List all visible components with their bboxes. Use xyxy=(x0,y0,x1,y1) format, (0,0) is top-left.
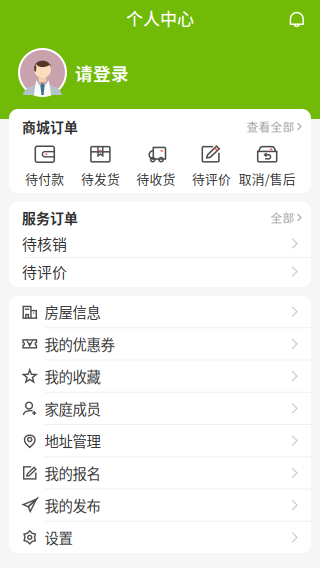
button[interactable]: 请登录 xyxy=(0,36,320,109)
staticText: 取消/售后 xyxy=(239,169,296,188)
staticText: 我的收藏 xyxy=(44,366,100,387)
staticText: 待发货 xyxy=(81,169,120,188)
staticText: 待评价 xyxy=(192,169,231,188)
button[interactable]: 全部 xyxy=(271,203,302,232)
button[interactable]: 待收货 xyxy=(128,143,184,188)
button[interactable]: 我的优惠券 xyxy=(9,328,311,359)
button[interactable]: 我的收藏 xyxy=(9,360,311,392)
staticText: 待收货 xyxy=(136,169,175,188)
button[interactable]: 我的报名 xyxy=(9,457,311,488)
button[interactable]: 待评价 xyxy=(9,258,311,285)
button[interactable]: 地址管理 xyxy=(9,425,311,456)
staticText: 待核销 xyxy=(22,233,67,254)
button[interactable]: 设置 xyxy=(9,522,311,553)
staticText: 房屋信息 xyxy=(44,301,100,322)
staticText: 地址管理 xyxy=(44,430,100,451)
staticText: 请登录 xyxy=(75,60,129,85)
staticText: 待评价 xyxy=(22,261,67,282)
staticText: 设置 xyxy=(44,527,72,548)
button[interactable]: 房屋信息 xyxy=(9,296,311,327)
button[interactable]: 待评价 xyxy=(184,143,239,188)
staticText: 商城订单 xyxy=(22,116,78,137)
button[interactable]: 查看全部 xyxy=(247,112,302,141)
button[interactable]: 我的发布 xyxy=(9,489,311,521)
button[interactable]: 待付款 xyxy=(17,143,73,188)
staticText: 全部 xyxy=(271,209,295,226)
staticText: 家庭成员 xyxy=(44,398,100,419)
staticText: 个人中心 xyxy=(126,6,194,30)
staticText: 我的发布 xyxy=(44,495,100,516)
staticText: 服务订单 xyxy=(22,207,78,228)
staticText: 我的报名 xyxy=(44,462,100,483)
staticText: 待付款 xyxy=(25,169,64,188)
button[interactable]: 取消/售后 xyxy=(239,143,295,188)
button[interactable]: 待核销 xyxy=(9,230,311,257)
button[interactable]: 通知 xyxy=(285,6,307,29)
staticText: 查看全部 xyxy=(247,118,295,135)
button[interactable]: 家庭成员 xyxy=(9,393,311,424)
staticText: 我的优惠券 xyxy=(44,333,114,354)
button[interactable]: 待发货 xyxy=(73,143,128,188)
